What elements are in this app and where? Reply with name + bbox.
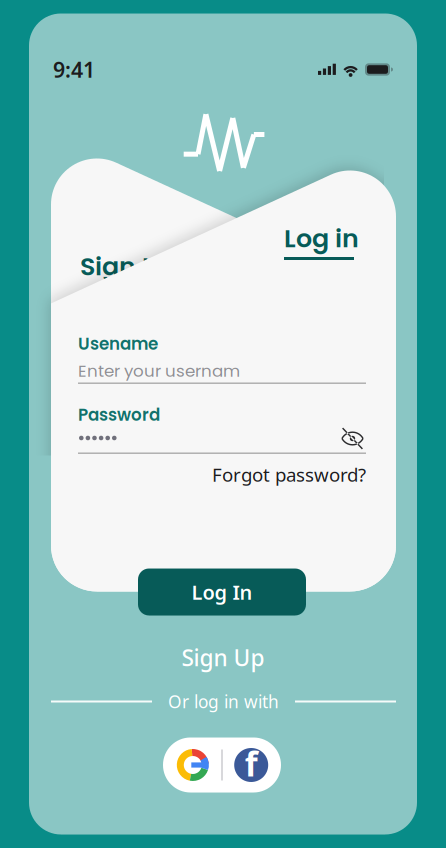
- staticText: Enter your usernam: [78, 359, 240, 383]
- button[interactable]: Log in: [284, 224, 374, 260]
- staticText: Password: [78, 403, 160, 427]
- staticText: Usename: [78, 332, 158, 356]
- button[interactable]: Continue with Facebook: [223, 737, 280, 792]
- staticText: Sign Up: [80, 249, 177, 284]
- staticText: Log In: [191, 579, 252, 605]
- staticText: 9:41: [53, 55, 95, 84]
- staticText: Or log in with: [168, 690, 279, 713]
- button[interactable]: Log In: [138, 568, 306, 615]
- button[interactable]: Continue with Google: [164, 737, 221, 792]
- staticText: Sign Up: [181, 642, 264, 672]
- staticText: f: [245, 741, 258, 786]
- button[interactable]: Sign Up: [29, 643, 417, 671]
- staticText: Forgot password?: [212, 462, 366, 487]
- button[interactable]: Show password: [341, 426, 364, 450]
- staticText: Log in: [284, 221, 359, 256]
- button[interactable]: Forgot password?: [78, 463, 366, 485]
- button[interactable]: Sign Up: [80, 251, 180, 281]
